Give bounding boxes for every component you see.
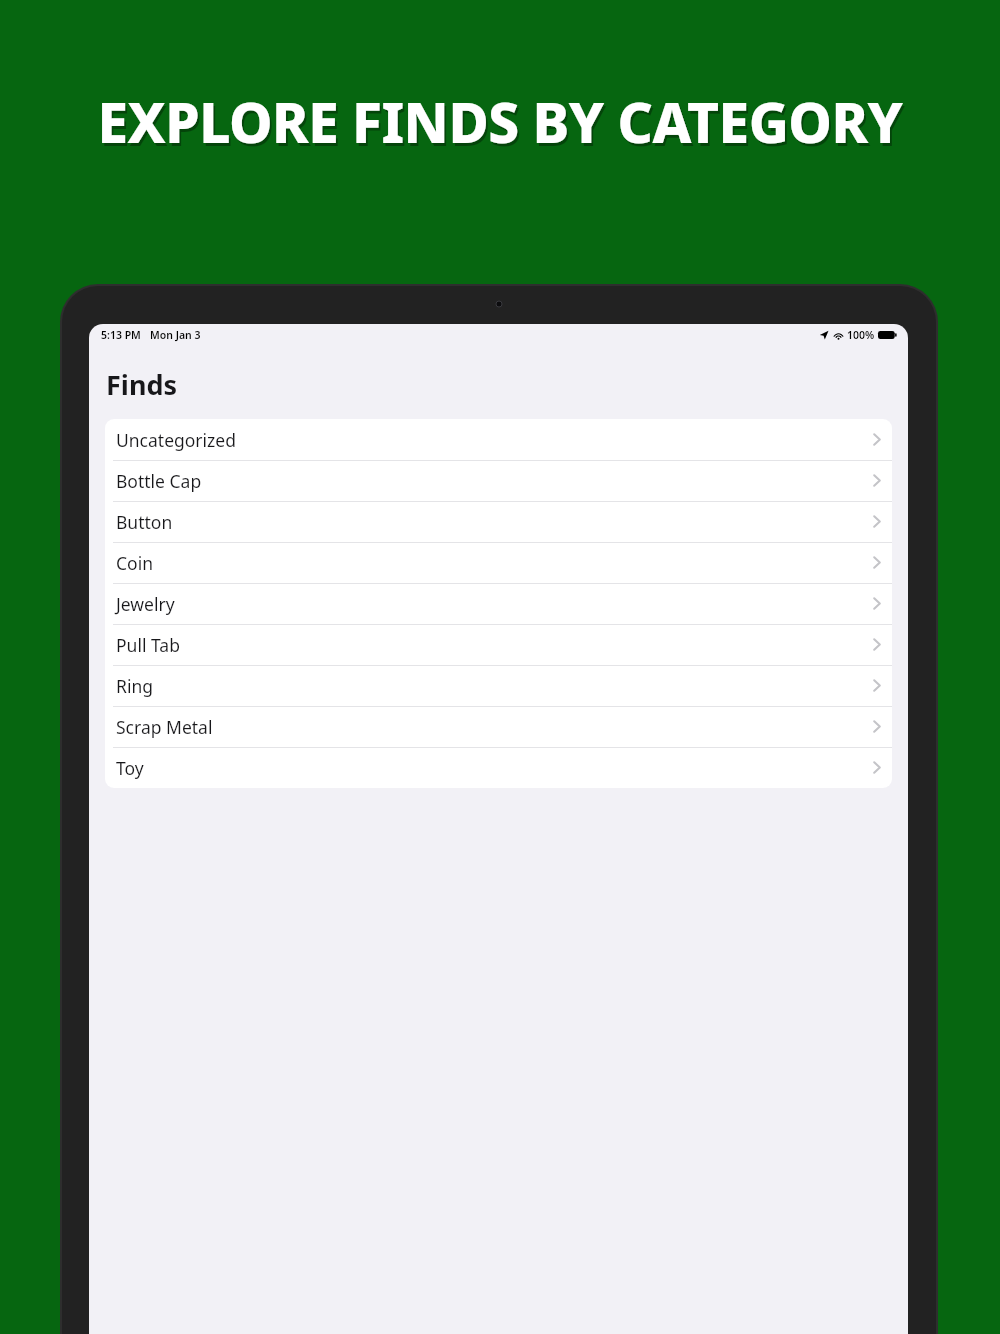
- staticText: EXPLORE FINDS BY CATEGORY: [2, 87, 1000, 162]
- other: Open Scrap Metal: [873, 720, 881, 733]
- staticText: Jewelry: [116, 592, 175, 616]
- staticText: Coin: [116, 551, 153, 575]
- other: Open Jewelry: [873, 597, 881, 610]
- button[interactable]: Uncategorized: [105, 419, 892, 460]
- staticText: Finds: [106, 366, 178, 403]
- button[interactable]: Bottle Cap: [105, 460, 892, 501]
- staticText: EXPLORE FINDS BY CATEGORY: [0, 84, 1000, 159]
- staticText: Toy: [116, 756, 144, 780]
- other: Open Button: [873, 515, 881, 528]
- other: Open Bottle Cap: [873, 474, 881, 487]
- button[interactable]: Toy: [105, 747, 892, 788]
- other: Open Toy: [873, 761, 881, 774]
- other: Open Pull Tab: [873, 638, 881, 651]
- staticText: 100%: [847, 328, 875, 342]
- button[interactable]: Button: [105, 501, 892, 542]
- other: Open Coin: [873, 556, 881, 569]
- staticText: 5:13 PM: [101, 328, 141, 342]
- button[interactable]: Coin: [105, 542, 892, 583]
- button[interactable]: Ring: [105, 665, 892, 706]
- staticText: Bottle Cap: [116, 469, 202, 493]
- staticText: Pull Tab: [116, 633, 180, 657]
- button[interactable]: Jewelry: [105, 583, 892, 624]
- other: Open Ring: [873, 679, 881, 692]
- other: Open Uncategorized: [873, 433, 881, 446]
- staticText: Mon Jan 3: [150, 328, 201, 342]
- button[interactable]: Pull Tab: [105, 624, 892, 665]
- staticText: Ring: [116, 674, 153, 698]
- staticText: Scrap Metal: [116, 715, 213, 739]
- button[interactable]: Scrap Metal: [105, 706, 892, 747]
- staticText: Button: [116, 510, 173, 534]
- staticText: Uncategorized: [116, 428, 236, 452]
